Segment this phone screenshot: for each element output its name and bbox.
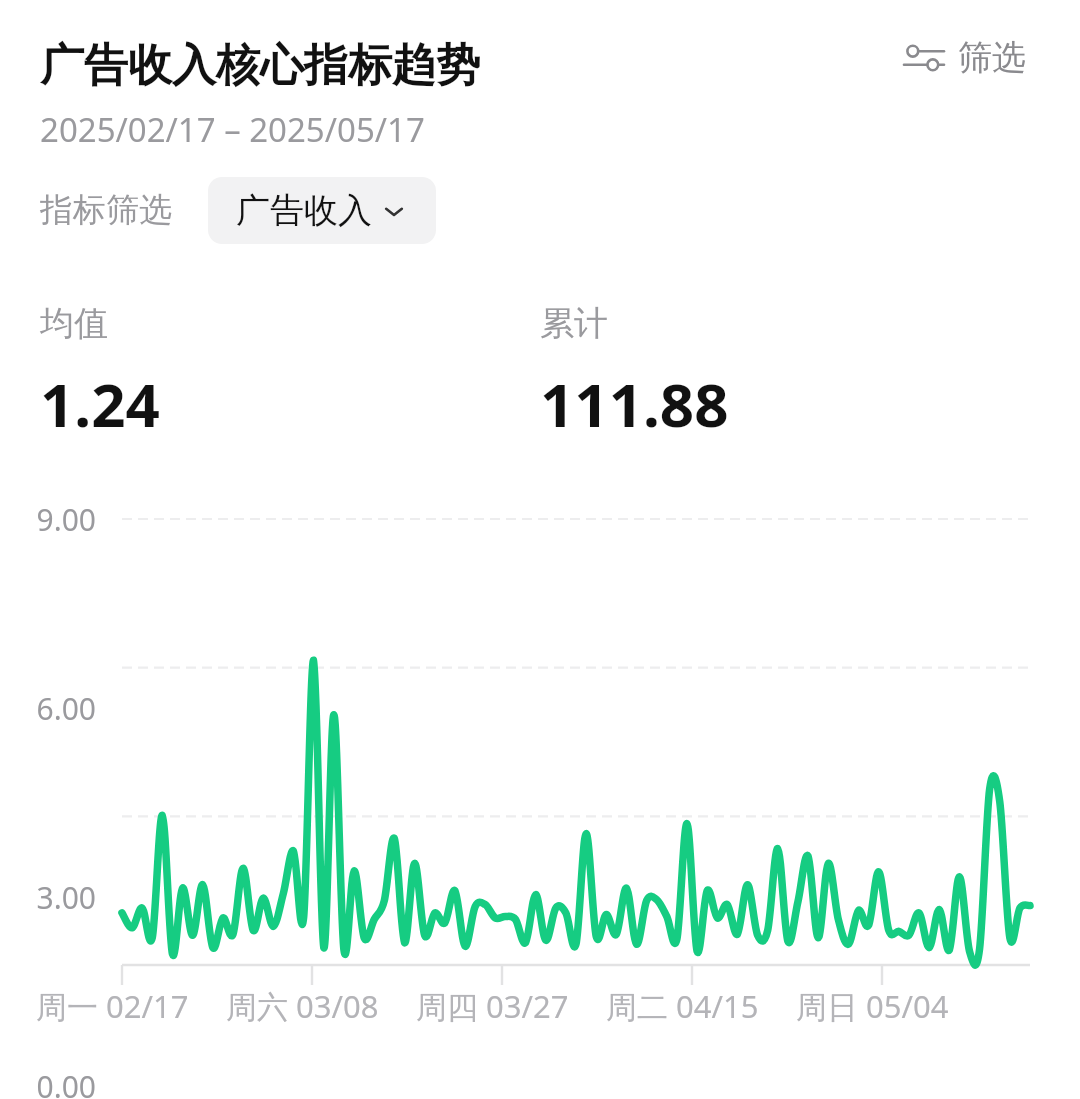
staticText: 广告收入 [236,189,372,232]
staticText: 6.00 [0,688,96,729]
staticText: 0.00 [0,1066,96,1099]
button[interactable]: 广告收入 [208,177,436,244]
staticText: 1.24 [40,363,160,445]
staticText: 周四 03/27 [416,985,569,1027]
button[interactable]: 筛选 [898,28,1032,87]
staticText: 3.00 [0,877,96,918]
staticText: 筛选 [958,36,1026,79]
staticText: 周六 03/08 [226,985,379,1027]
staticText: 周日 05/04 [796,985,949,1027]
staticText: 周二 04/15 [606,985,759,1027]
staticText: 累计 [540,302,608,345]
staticText: 111.88 [540,363,729,445]
staticText: 指标筛选 [40,189,172,231]
staticText: 广告收入核心指标趋势 [40,38,480,93]
staticText: 周一 02/17 [36,985,189,1027]
staticText: 9.00 [0,499,96,540]
staticText: 均值 [40,302,108,345]
staticText: 2025/02/17 – 2025/05/17 [40,107,425,152]
